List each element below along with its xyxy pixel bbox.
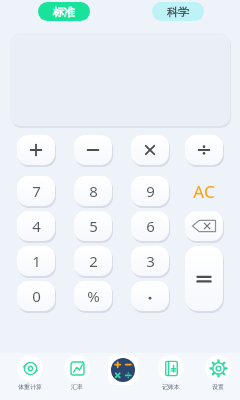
staticText: 设置 xyxy=(212,383,224,391)
button[interactable]: 设置 xyxy=(196,355,240,397)
staticText: 记账本 xyxy=(162,383,180,391)
button[interactable]: Backspace xyxy=(185,211,223,241)
button[interactable]: Plus xyxy=(17,135,55,165)
button[interactable]: Divide xyxy=(185,135,223,165)
button[interactable]: 6 xyxy=(131,211,169,241)
button[interactable]: 1 xyxy=(17,246,55,276)
staticText: 汇率 xyxy=(71,383,83,391)
button[interactable]: 0 xyxy=(17,281,55,311)
button[interactable]: 3 xyxy=(131,246,169,276)
staticText: 2 xyxy=(89,251,98,271)
staticText: 标准 xyxy=(53,5,75,19)
button[interactable]: 8 xyxy=(74,176,112,206)
button[interactable]: Equals xyxy=(185,246,223,311)
button[interactable] xyxy=(131,281,169,311)
staticText: 4 xyxy=(32,216,41,236)
staticText: 9 xyxy=(146,181,155,201)
button[interactable]: Minus xyxy=(74,135,112,165)
staticText: 1 xyxy=(32,251,41,271)
staticText: 6 xyxy=(146,216,155,236)
staticText: 科学 xyxy=(167,5,189,19)
staticText: 3 xyxy=(146,251,155,271)
button[interactable]: 5 xyxy=(74,211,112,241)
button[interactable]: 体重计算 xyxy=(8,355,52,397)
staticText: 5 xyxy=(89,216,98,236)
button[interactable]: 标准 xyxy=(38,2,90,21)
button[interactable]: 科学 xyxy=(152,2,204,21)
button[interactable]: 9 xyxy=(131,176,169,206)
button[interactable]: % xyxy=(74,281,112,311)
button[interactable]: 7 xyxy=(17,176,55,206)
button[interactable]: Calculator xyxy=(101,355,145,397)
staticText: 8 xyxy=(89,181,98,201)
button[interactable]: Multiply xyxy=(131,135,169,165)
staticText: 7 xyxy=(32,181,41,201)
button[interactable]: 汇率 xyxy=(55,355,99,397)
button[interactable]: AC xyxy=(185,176,223,206)
staticText: % xyxy=(87,286,100,306)
button[interactable]: 记账本 xyxy=(149,355,193,397)
staticText: 体重计算 xyxy=(18,383,42,391)
button[interactable]: 2 xyxy=(74,246,112,276)
button[interactable]: 4 xyxy=(17,211,55,241)
staticText: 0 xyxy=(32,286,41,306)
staticText: AC xyxy=(193,180,215,203)
